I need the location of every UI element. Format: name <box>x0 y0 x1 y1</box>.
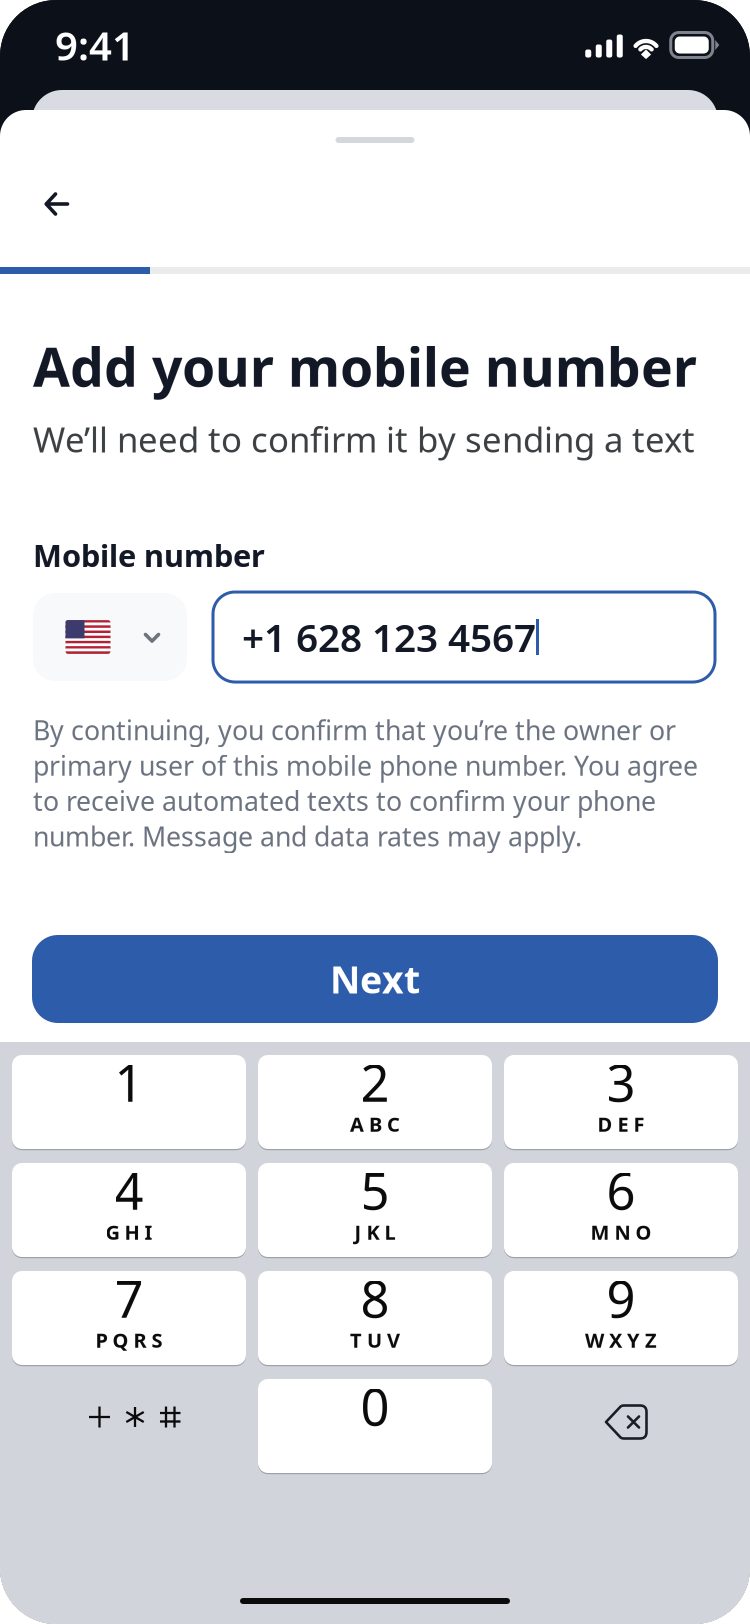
staticText: +1 628 123 4567 <box>242 611 536 663</box>
staticText: 0 <box>360 1372 389 1440</box>
staticText: Next <box>330 954 420 1004</box>
staticText: Mobile number <box>33 535 265 575</box>
button[interactable]: 8 <box>258 1271 492 1365</box>
staticText: W X Y Z <box>585 1327 657 1353</box>
button[interactable]: Next <box>32 935 718 1023</box>
button[interactable]: 9 <box>504 1271 738 1365</box>
staticText: P Q R S <box>95 1327 162 1353</box>
staticText: J K L <box>354 1219 395 1245</box>
staticText: M N O <box>590 1219 651 1245</box>
staticText: D E F <box>597 1111 644 1137</box>
staticText: T U V <box>350 1327 400 1353</box>
staticText: 5 <box>360 1156 389 1224</box>
staticText: 6 <box>606 1156 635 1224</box>
staticText: 3 <box>606 1048 635 1116</box>
staticText: 9:41 <box>55 18 135 71</box>
button[interactable]: 1 <box>12 1055 246 1149</box>
button[interactable]: Select country, United States <box>33 593 187 681</box>
staticText: Add your mobile number <box>33 331 697 401</box>
staticText: 8 <box>360 1264 389 1332</box>
button[interactable]: Symbols <box>12 1379 246 1473</box>
staticText: 7 <box>114 1264 143 1332</box>
button[interactable]: 2 <box>258 1055 492 1149</box>
staticText: 9 <box>606 1264 635 1332</box>
button[interactable]: 7 <box>12 1271 246 1365</box>
button[interactable]: 5 <box>258 1163 492 1257</box>
button[interactable]: Back <box>8 156 104 252</box>
staticText: G H I <box>105 1219 152 1245</box>
staticText: 4 <box>114 1156 143 1224</box>
staticText: 2 <box>360 1048 389 1116</box>
staticText: We’ll need to confirm it by sending a te… <box>33 416 695 462</box>
button[interactable]: 3 <box>504 1055 738 1149</box>
button[interactable]: 4 <box>12 1163 246 1257</box>
staticText: 1 <box>114 1048 143 1116</box>
button[interactable]: 0 <box>258 1379 492 1473</box>
staticText: A B C <box>350 1111 400 1137</box>
button[interactable]: 6 <box>504 1163 738 1257</box>
button[interactable]: Delete <box>504 1379 738 1473</box>
staticText: By continuing, you confirm that you’re t… <box>33 712 698 854</box>
